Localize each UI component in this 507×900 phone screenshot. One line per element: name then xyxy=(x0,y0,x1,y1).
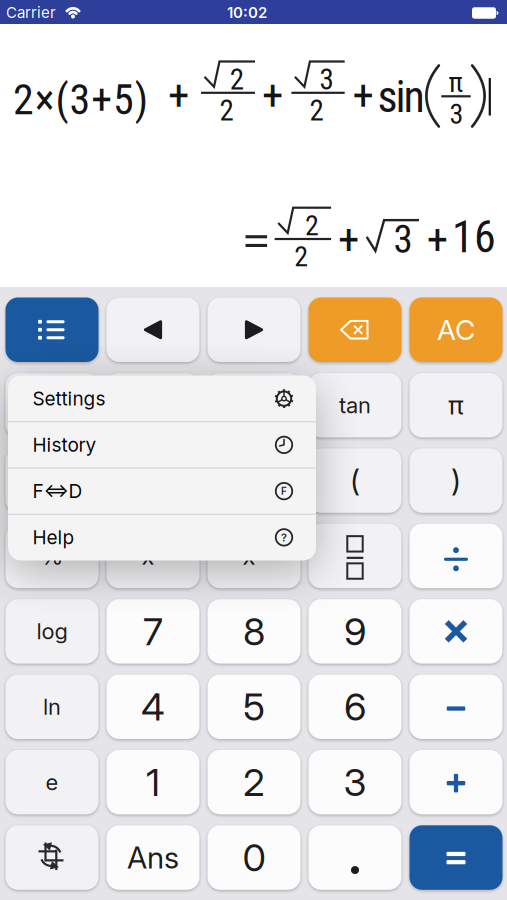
button[interactable]: e xyxy=(5,750,98,814)
button[interactable]: log xyxy=(5,599,98,664)
staticText: Settings xyxy=(32,387,105,410)
staticText: 10:02 xyxy=(227,3,267,21)
staticText: ln xyxy=(43,693,61,720)
staticText: Ans xyxy=(127,839,179,876)
button[interactable]: Settings xyxy=(8,375,316,422)
button[interactable]: cos xyxy=(207,373,300,437)
staticText: 5 xyxy=(243,684,265,730)
staticText: π xyxy=(448,389,464,421)
button[interactable]: Help xyxy=(8,514,316,560)
staticText: tan xyxy=(339,392,371,418)
button[interactable]: 8 xyxy=(207,599,300,664)
staticText: e xyxy=(45,769,58,795)
staticText: + xyxy=(262,70,283,121)
button[interactable]: % xyxy=(5,524,98,588)
staticText: xⁿ xyxy=(242,541,265,570)
button[interactable]: 9 xyxy=(308,599,401,664)
staticText: + xyxy=(338,214,359,265)
button[interactable]: ! xyxy=(207,448,300,513)
button[interactable]: ln xyxy=(5,674,98,739)
staticText: 3 xyxy=(320,63,334,97)
staticText: x² xyxy=(141,541,164,570)
button[interactable]: Delete xyxy=(308,297,401,362)
button[interactable]: Move cursor left xyxy=(106,297,199,362)
button[interactable]: √ xyxy=(106,448,199,513)
staticText: Help xyxy=(32,526,74,549)
staticText: 4 xyxy=(141,684,165,730)
staticText: 3 xyxy=(393,216,412,262)
button[interactable]: Rotate keyboard xyxy=(5,825,98,890)
staticText: 1 xyxy=(146,759,160,805)
button[interactable]: 3 xyxy=(308,750,401,814)
staticText: ( xyxy=(350,462,360,499)
button[interactable]: 6 xyxy=(308,674,401,739)
button[interactable]: 0 xyxy=(207,825,300,890)
staticText: sin xyxy=(377,71,424,123)
button[interactable]: Ans xyxy=(106,825,199,890)
button[interactable]: Fraction xyxy=(308,524,401,588)
button[interactable]: 2 xyxy=(207,750,300,814)
staticText: 2 xyxy=(294,240,308,273)
button[interactable]: Divide xyxy=(409,524,502,588)
button[interactable]: Minus xyxy=(409,674,502,739)
staticText: π xyxy=(448,66,463,99)
staticText: History xyxy=(32,433,96,456)
staticText: % xyxy=(40,541,63,570)
staticText: ) xyxy=(451,462,461,499)
button[interactable]: xⁿ xyxy=(207,524,300,588)
staticText: deg xyxy=(32,392,71,418)
staticText: 3 xyxy=(343,759,366,805)
staticText: 2 xyxy=(230,63,244,97)
button[interactable]: F⇔D xyxy=(8,468,316,514)
staticText: + xyxy=(168,70,189,121)
staticText: 16 xyxy=(452,211,496,263)
staticText: 2 xyxy=(305,209,319,242)
button[interactable]: Multiply xyxy=(409,599,502,664)
button[interactable]: ( xyxy=(308,448,401,513)
button[interactable]: tan xyxy=(308,373,401,437)
staticText: AC xyxy=(437,313,475,347)
button[interactable]: x² xyxy=(106,524,199,588)
staticText: 6 xyxy=(344,684,366,730)
button[interactable]: Equals xyxy=(409,825,502,890)
staticText: Carrier xyxy=(6,3,56,21)
staticText: √ xyxy=(145,466,160,495)
staticText: 2 xyxy=(219,94,233,128)
staticText: x² xyxy=(41,467,63,494)
button[interactable]: 7 xyxy=(106,599,199,664)
staticText: 8 xyxy=(243,608,265,654)
button[interactable]: Decimal point xyxy=(308,825,401,890)
button[interactable]: 4 xyxy=(106,674,199,739)
button[interactable]: x² xyxy=(5,448,98,513)
staticText: ! xyxy=(251,467,257,494)
staticText: 2×(3+5) xyxy=(13,75,148,125)
staticText: 7 xyxy=(143,608,163,654)
staticText: 0 xyxy=(242,835,265,881)
staticText: log xyxy=(36,618,67,645)
button[interactable]: π xyxy=(409,373,502,437)
button[interactable]: Plus xyxy=(409,750,502,814)
button[interactable]: Menu xyxy=(5,297,98,362)
button[interactable]: sin xyxy=(106,373,199,437)
button[interactable]: 5 xyxy=(207,674,300,739)
staticText: 2 xyxy=(243,759,265,805)
button[interactable]: Move cursor right xyxy=(207,297,300,362)
staticText: F⇔D xyxy=(32,480,82,503)
staticText: F xyxy=(281,485,287,497)
button[interactable]: AC xyxy=(409,297,502,362)
staticText: 2 xyxy=(309,94,323,128)
button[interactable]: ) xyxy=(409,448,502,513)
button[interactable]: deg xyxy=(5,373,98,437)
staticText: 3 xyxy=(450,98,464,130)
staticText: + xyxy=(352,70,373,121)
staticText: 9 xyxy=(344,608,366,654)
staticText: ? xyxy=(281,531,287,544)
button[interactable]: History xyxy=(8,422,316,468)
staticText: + xyxy=(427,214,448,265)
button[interactable]: 1 xyxy=(106,750,199,814)
